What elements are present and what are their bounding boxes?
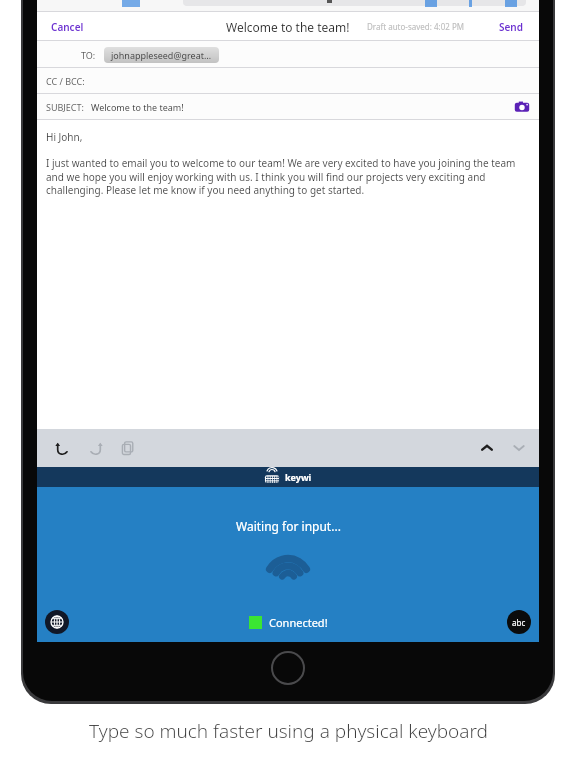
staticText: SUBJECT: — [46, 101, 84, 113]
staticText: Welcome to the team! — [226, 19, 350, 35]
staticText: Welcome to the team! — [91, 101, 184, 113]
button[interactable]: Paste — [113, 433, 143, 463]
staticText: CC / BCC: — [46, 75, 85, 87]
button[interactable]: Insert photo — [513, 98, 531, 116]
button[interactable]: CC / BCC: — [37, 68, 539, 94]
staticText: Cancel — [51, 20, 84, 34]
button[interactable]: Send — [493, 16, 529, 38]
staticText: Type so much faster using a physical key… — [89, 718, 488, 744]
staticText: TO: — [81, 49, 96, 61]
button[interactable]: abc — [507, 610, 531, 634]
button[interactable]: Redo — [80, 433, 110, 463]
staticText: johnappleseed@great… — [111, 49, 212, 61]
button[interactable]: SUBJECT: — [37, 94, 539, 120]
staticText: abc — [512, 617, 526, 628]
button[interactable]: TO: — [37, 41, 539, 68]
staticText: Connected! — [269, 615, 328, 630]
staticText: Draft auto-saved: 4:02 PM — [367, 21, 465, 32]
button[interactable]: Next field — [505, 434, 533, 462]
button[interactable]: Previous field — [473, 434, 501, 462]
staticText: Hi John, — [46, 130, 83, 144]
staticText: Waiting for input... — [236, 518, 341, 534]
button[interactable]: keywi — [37, 467, 539, 487]
button[interactable]: johnappleseed@great… — [104, 47, 219, 63]
staticText: Send — [499, 20, 523, 34]
button[interactable]: Switch keyboard — [45, 610, 69, 634]
staticText: I just wanted to email you to welcome to… — [46, 156, 530, 197]
button[interactable]: Cancel — [45, 16, 90, 38]
button[interactable]: Undo — [47, 433, 77, 463]
staticText: keywi — [285, 471, 312, 483]
